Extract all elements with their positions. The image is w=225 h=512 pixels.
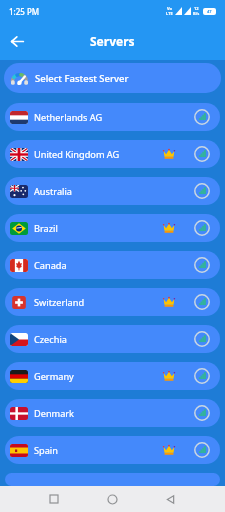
staticText: 1:25 PM (9, 6, 40, 17)
staticText: Brazil (34, 222, 58, 235)
button[interactable] (50, 495, 58, 503)
staticText: Australia (34, 185, 72, 198)
button[interactable]: United Kingdom AG (5, 140, 220, 168)
staticText: Germany (34, 370, 74, 383)
button[interactable] (11, 35, 24, 48)
button[interactable] (108, 495, 117, 504)
staticText: 47 (207, 9, 212, 14)
staticText: Servers (90, 33, 135, 49)
button[interactable]: Denmark (5, 399, 220, 427)
staticText: Select Fastest Server (35, 72, 129, 85)
button[interactable]: Canada (5, 251, 220, 279)
staticText: 12 (194, 6, 199, 11)
staticText: LTE (166, 11, 173, 16)
button[interactable]: Select Fastest Server (4, 63, 221, 93)
button[interactable]: Brazil (5, 214, 220, 242)
button[interactable]: Netherlands AG (5, 103, 220, 131)
staticText: Spain (34, 444, 58, 457)
staticText: Denmark (34, 407, 75, 420)
staticText: United Kingdom AG (34, 148, 120, 161)
staticText: Czechia (34, 333, 67, 346)
staticText: B/s (193, 11, 200, 16)
button[interactable]: Germany (5, 362, 220, 390)
staticText: Canada (34, 259, 67, 272)
button[interactable]: Switzerland (5, 288, 220, 316)
button[interactable]: Czechia (5, 325, 220, 353)
button[interactable] (5, 473, 220, 486)
button[interactable]: Australia (5, 177, 220, 205)
staticText: Vo (167, 6, 173, 11)
staticText: Switzerland (34, 296, 85, 309)
button[interactable]: Spain (5, 436, 220, 464)
button[interactable] (166, 495, 175, 504)
staticText: Netherlands AG (34, 111, 103, 124)
